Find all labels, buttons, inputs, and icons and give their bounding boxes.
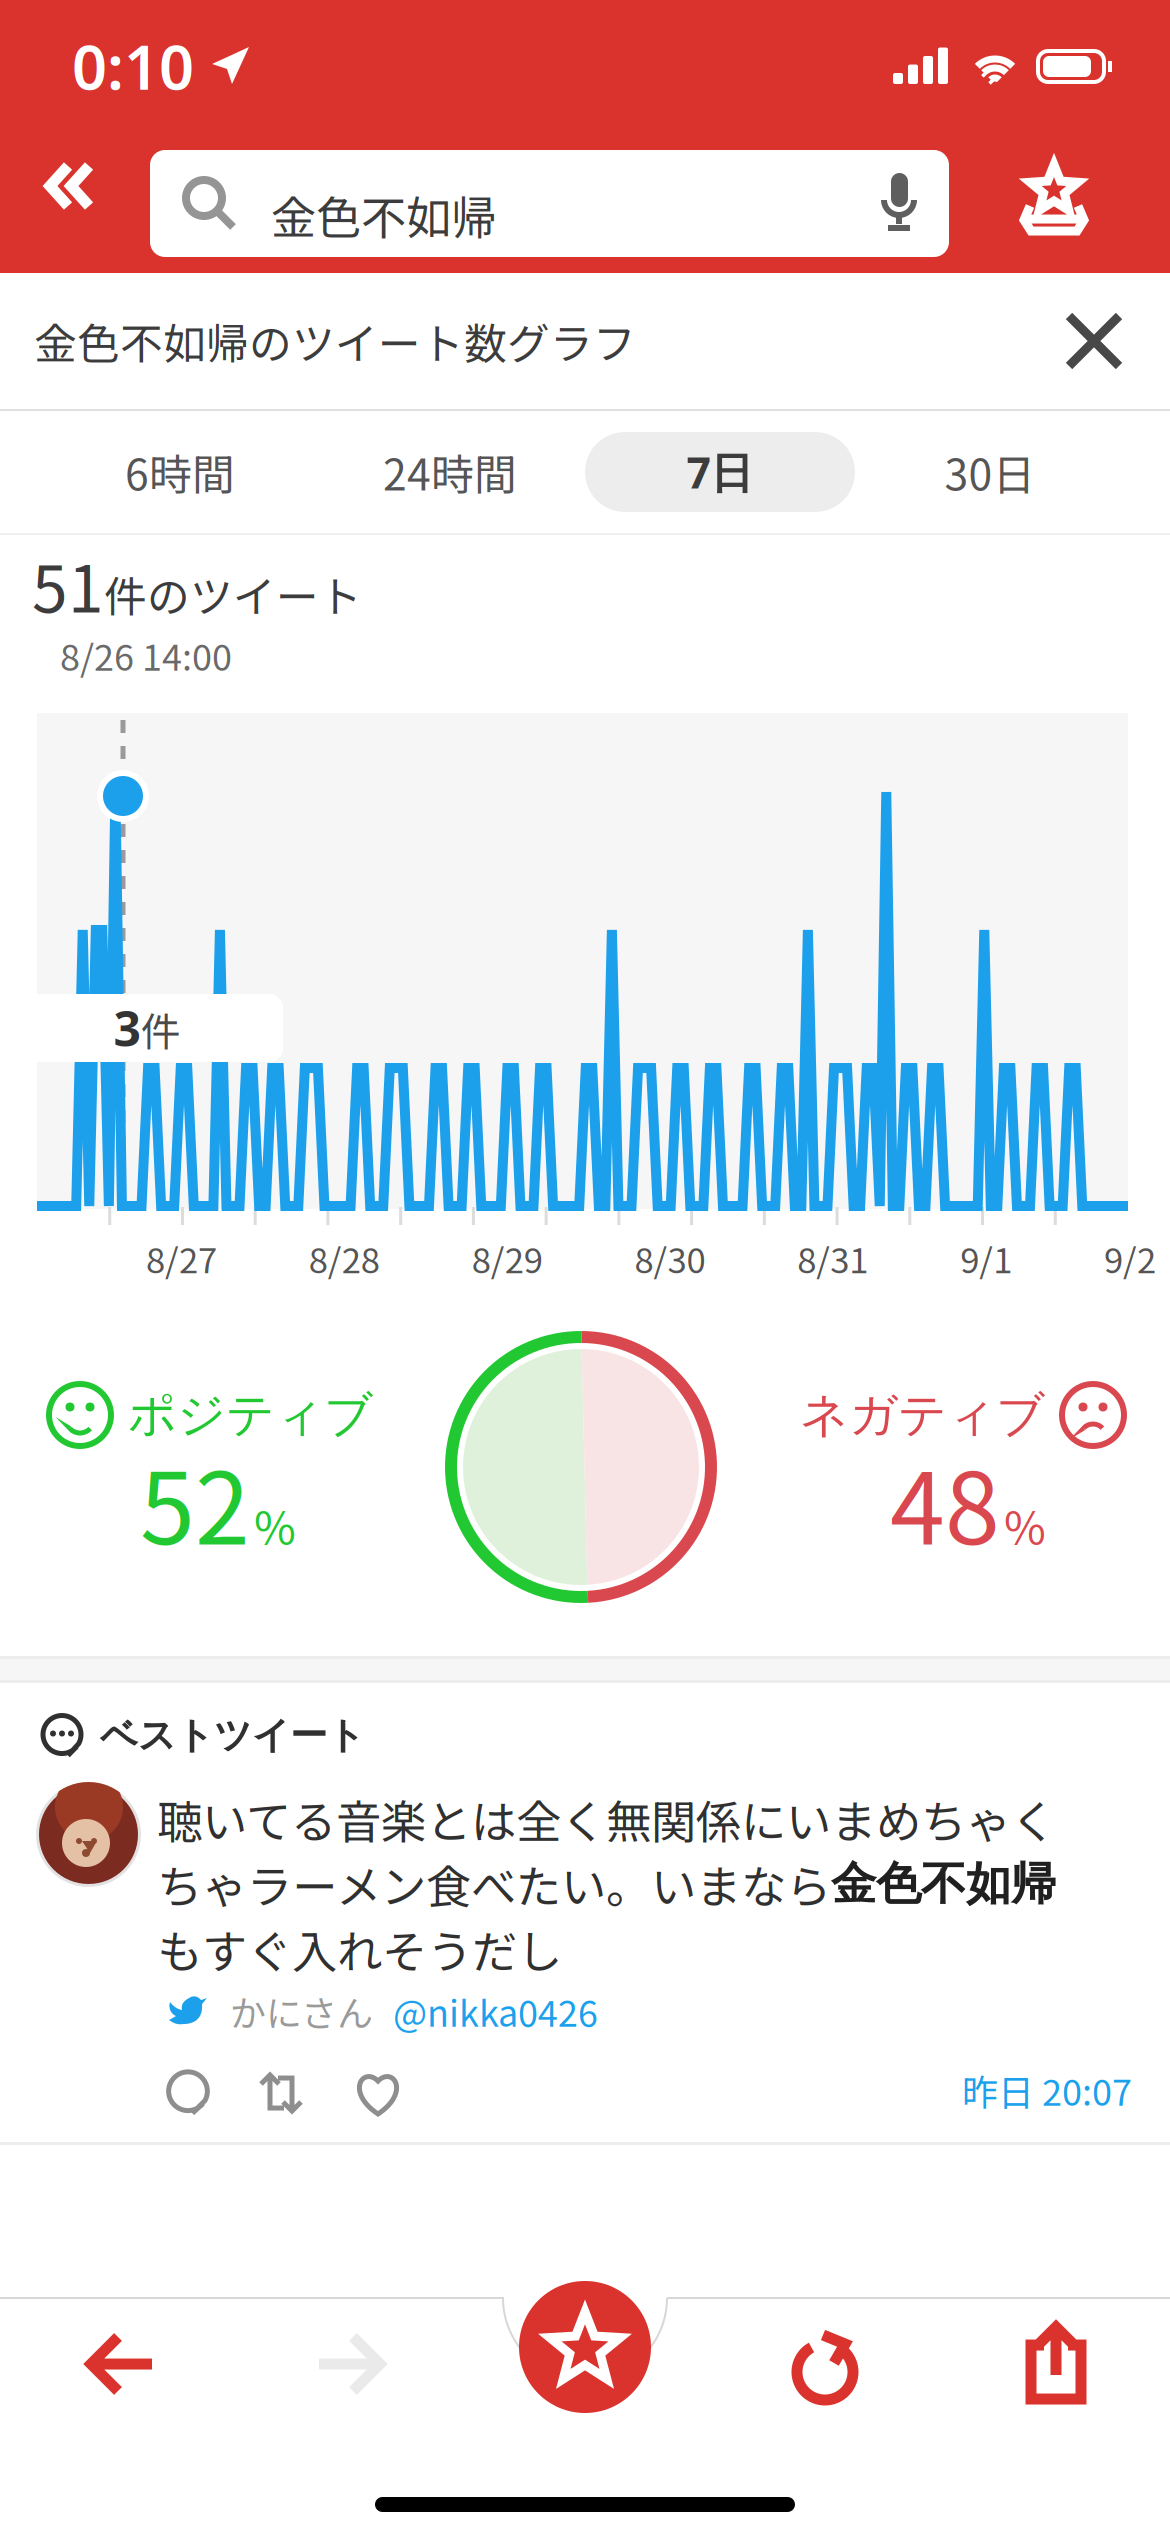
staticText: 8/29 xyxy=(472,1233,543,1283)
staticText: 金色不如帰のツイート数グラフ xyxy=(34,310,636,372)
button[interactable]: お気に入り xyxy=(510,2272,660,2422)
button[interactable]: 閉じる xyxy=(1034,273,1154,409)
staticText: 件のツイート xyxy=(104,563,362,625)
staticText: 8/31 xyxy=(797,1233,868,1283)
button[interactable]: 7日 xyxy=(585,432,855,512)
staticText: 0:10 xyxy=(72,24,194,108)
button[interactable]: リツイート xyxy=(245,2063,317,2123)
staticText: もすぐ入れそうだし xyxy=(157,1916,562,1982)
button[interactable]: 進む xyxy=(275,2289,425,2439)
staticText: 金色不如帰 xyxy=(831,1855,1056,1912)
staticText: 8/26 14:00 xyxy=(60,629,232,681)
staticText: 24時間 xyxy=(383,441,517,503)
staticText: 8/30 xyxy=(634,1233,705,1283)
staticText: ちゃラーメン食べたい。いまなら xyxy=(157,1851,831,1917)
button[interactable]: 24時間 xyxy=(315,432,585,512)
staticText: % xyxy=(254,1492,296,1557)
staticText: @nikka0426 xyxy=(393,1985,598,2037)
staticText: 51 xyxy=(32,538,104,631)
button[interactable]: お気に入り xyxy=(984,135,1124,265)
button[interactable]: 再読み込み xyxy=(751,2293,901,2443)
staticText: 金色不如帰 xyxy=(271,182,496,248)
staticText: 昨日 20:07 xyxy=(962,2064,1132,2116)
staticText: 件 xyxy=(140,1000,180,1058)
button[interactable]: 戻る xyxy=(46,2289,196,2439)
staticText: 聴いてる音楽とは全く無関係にいまめちゃく xyxy=(157,1786,1056,1852)
staticText: 9/2 xyxy=(1104,1233,1156,1283)
staticText: ベストツイート xyxy=(100,1712,365,1759)
button[interactable]: 返信 xyxy=(152,2063,224,2123)
button[interactable]: 30日 xyxy=(855,432,1125,512)
staticText: % xyxy=(1004,1492,1046,1557)
button[interactable]: 共有 xyxy=(981,2291,1131,2441)
button[interactable]: いいね xyxy=(346,2063,410,2123)
button[interactable]: 戻る xyxy=(3,121,133,251)
staticText: 48 xyxy=(890,1430,1000,1573)
staticText: 9/1 xyxy=(960,1233,1012,1283)
staticText: 7日 xyxy=(686,443,753,501)
staticText: 3 xyxy=(113,995,140,1061)
staticText: 6時間 xyxy=(125,441,235,503)
staticText: 8/28 xyxy=(309,1233,380,1283)
staticText: 52 xyxy=(140,1430,250,1573)
staticText: ネガティブ xyxy=(800,1385,1045,1445)
staticText: ポジティブ xyxy=(128,1385,373,1445)
button[interactable]: 金色不如帰 xyxy=(150,150,949,257)
staticText: かにさん xyxy=(230,1985,373,2037)
staticText: 8/27 xyxy=(146,1233,217,1283)
staticText: 30日 xyxy=(944,441,1035,503)
button[interactable]: 6時間 xyxy=(45,432,315,512)
